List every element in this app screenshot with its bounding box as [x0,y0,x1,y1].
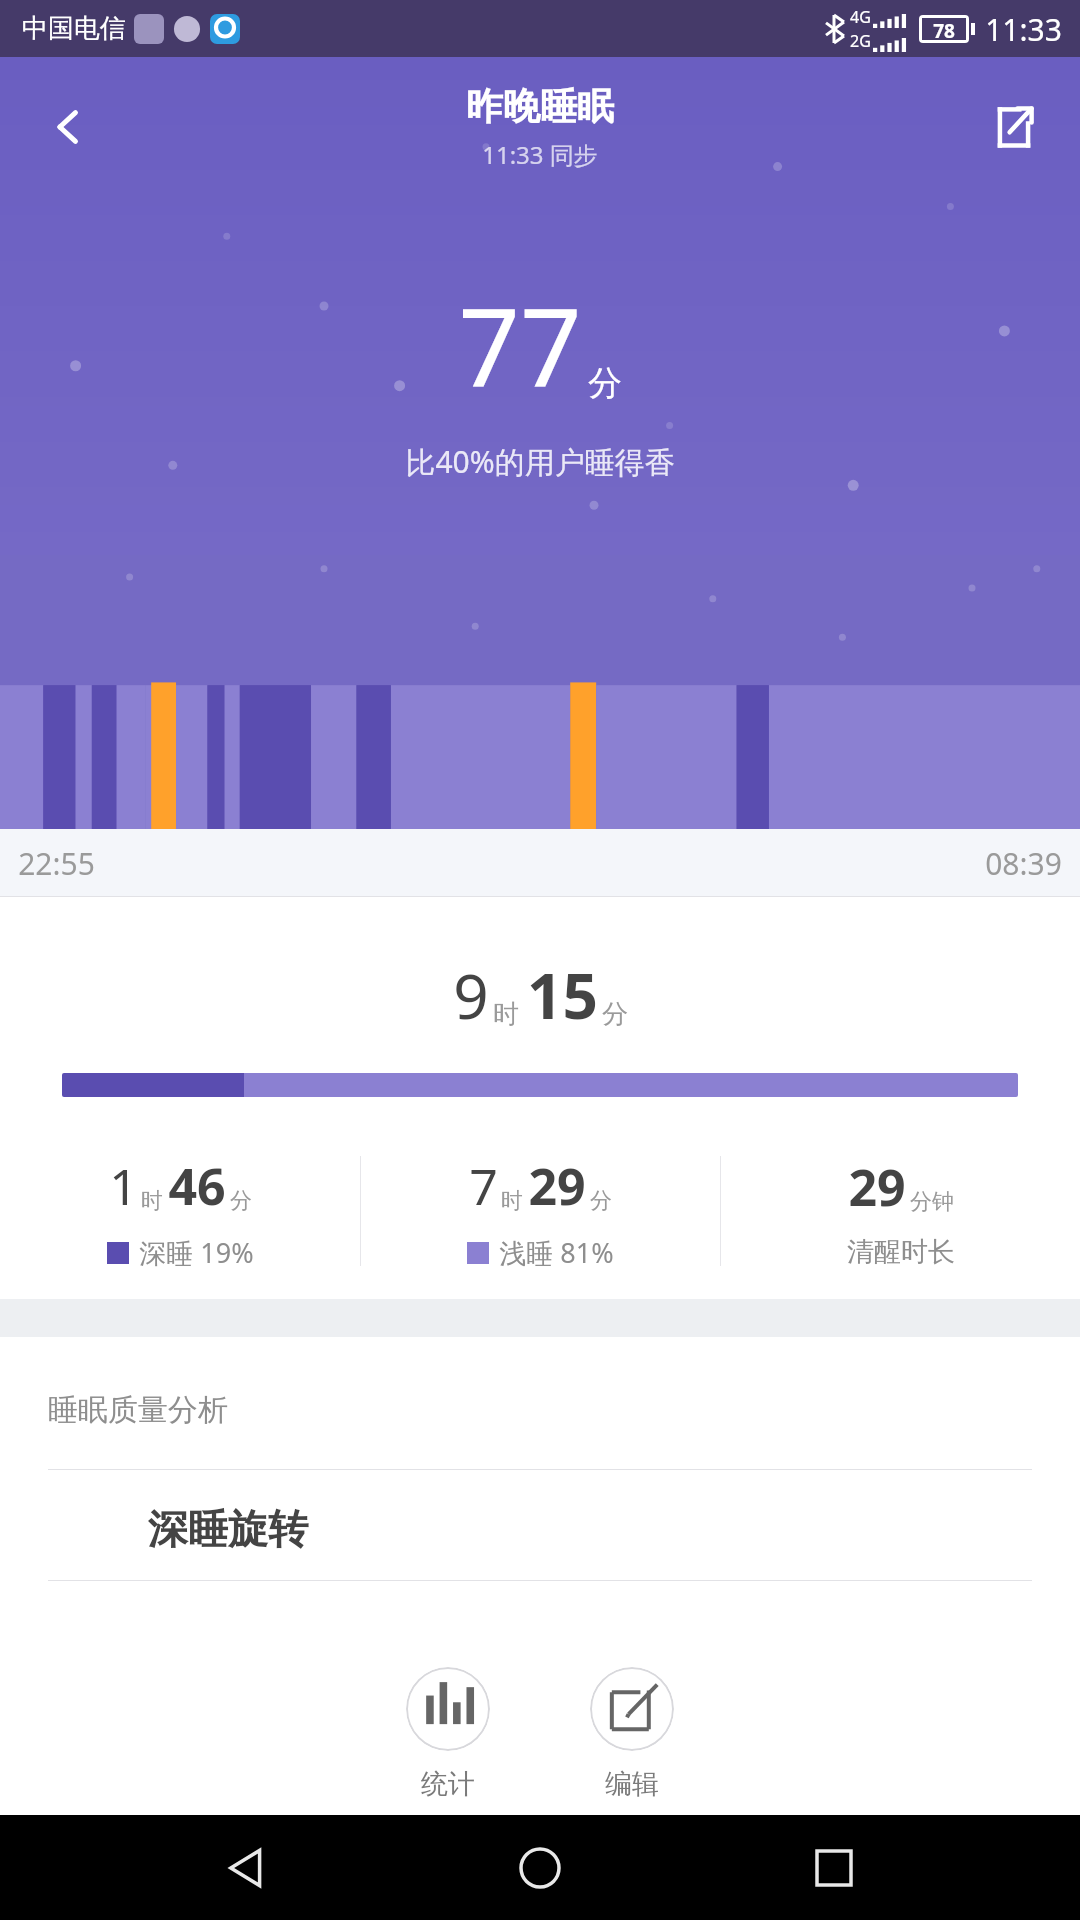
button[interactable]: Home [492,1820,588,1916]
staticText: 78 [933,18,955,40]
staticText: 4G [850,6,871,28]
button[interactable]: 29 [721,1153,1080,1269]
staticText: 分 [230,1187,252,1215]
staticText: 77 [458,272,582,419]
staticText: 分钟 [910,1188,954,1216]
staticText: 时 [141,1187,163,1215]
staticText: 08:39 [985,843,1062,884]
button[interactable]: 7 [361,1152,720,1271]
button[interactable]: 统计 [398,1667,498,1801]
staticText: 昨晚睡眠 [466,83,614,130]
staticText: 分 [588,362,622,405]
staticText: 浅睡 81% [499,1234,614,1271]
button[interactable]: Share [976,89,1052,165]
staticText: 睡眠质量分析 [48,1391,228,1429]
staticText: 1 [109,1152,138,1220]
staticText: 2G [850,30,871,52]
button[interactable]: Recents [786,1820,882,1916]
staticText: 46 [168,1152,226,1220]
button[interactable]: Back [30,89,106,165]
staticText: 22:55 [18,843,95,884]
staticText: 分 [602,998,628,1031]
staticText: 清醒时长 [847,1235,955,1269]
staticText: 统计 [421,1767,475,1801]
staticText: 11:33 同步 [482,138,598,171]
staticText: 比40%的用户睡得香 [405,441,675,482]
staticText: 9 [453,953,489,1037]
staticText: 时 [493,998,519,1031]
staticText: 11:33 [985,9,1062,50]
staticText: 29 [848,1153,906,1221]
button[interactable]: 1 [0,1152,360,1271]
staticText: 编辑 [605,1767,659,1801]
staticText: 29 [528,1152,586,1220]
button[interactable]: 编辑 [582,1667,682,1801]
staticText: 15 [527,953,598,1037]
staticText: 时 [501,1187,523,1215]
button[interactable]: Back [198,1820,294,1916]
staticText: 7 [469,1152,498,1220]
staticText: 中国电信 [22,12,126,45]
staticText: 分 [590,1187,612,1215]
staticText: 深睡 19% [139,1234,254,1271]
staticText: 深睡旋转 [148,1504,308,1554]
